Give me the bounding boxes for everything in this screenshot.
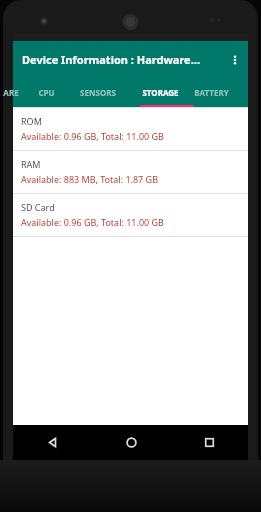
button[interactable]: SENSORS [67, 78, 129, 107]
button[interactable]: Home [92, 425, 170, 460]
staticText: Available: 883 MB, Total: 1.87 GB [21, 173, 158, 185]
staticText: Device Information : Hardware… [22, 52, 222, 67]
staticText: ARE [3, 87, 19, 98]
button[interactable]: Recent apps [170, 425, 248, 460]
staticText: Available: 0.96 GB, Total: 11.00 GB [21, 216, 164, 228]
button[interactable]: ARE [0, 78, 25, 107]
button[interactable]: More options [222, 41, 248, 78]
staticText: BATTERY [194, 87, 229, 98]
button[interactable]: SD Card [13, 194, 248, 237]
button[interactable]: STORAGE [129, 78, 191, 107]
button[interactable]: ROM [13, 108, 248, 151]
staticText: CPU [38, 87, 55, 98]
button[interactable]: CPU [25, 78, 67, 107]
staticText: RAM [21, 158, 41, 170]
staticText: Available: 0.96 GB, Total: 11.00 GB [21, 130, 164, 142]
staticText: ROM [21, 115, 42, 127]
staticText: STORAGE [142, 87, 179, 98]
button[interactable]: BATTERY [191, 78, 232, 107]
button[interactable]: RAM [13, 151, 248, 194]
staticText: SD Card [21, 201, 55, 213]
button[interactable]: Back [13, 425, 92, 460]
staticText: SENSORS [80, 87, 116, 98]
